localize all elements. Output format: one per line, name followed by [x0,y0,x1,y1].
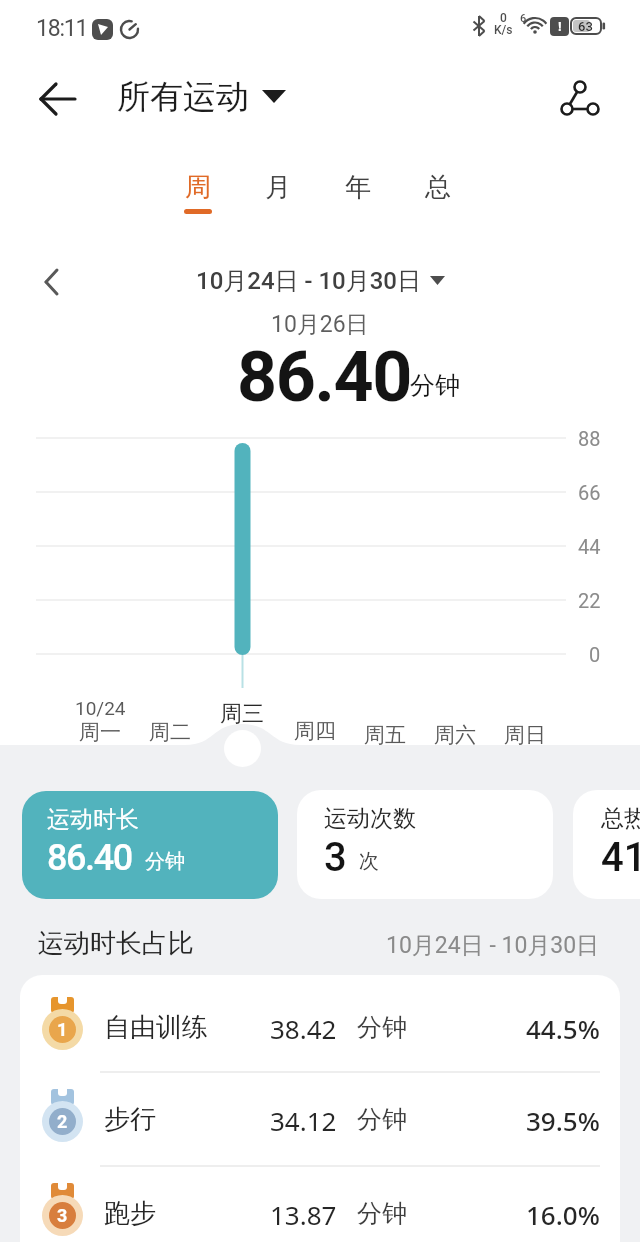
staticText: 自由训练 [104,1011,208,1044]
staticText: 次 [359,849,379,874]
staticText: 周二 [149,719,191,745]
staticText: 13.87 [270,1197,337,1232]
staticText: 0 [500,11,507,25]
button[interactable]: 所有运动 [117,76,286,118]
staticText: 分钟 [410,370,460,401]
button[interactable] [32,260,72,304]
staticText: 41 [601,834,640,881]
staticText: 周五 [364,722,406,748]
staticText: 总热量 [601,804,640,833]
staticText: 66 [578,481,601,504]
staticText: 86.40 [47,837,132,879]
staticText: ! [558,19,562,34]
staticText: 44.5% [526,1011,600,1046]
staticText: 22 [578,589,601,612]
staticText: 周一 [79,719,121,745]
staticText: 步行 [104,1103,156,1136]
staticText: 所有运动 [117,76,249,118]
button[interactable]: 运动次数 [297,790,553,899]
staticText: 分钟 [357,1012,407,1043]
button[interactable]: 3 [20,1168,620,1242]
staticText: 44 [578,535,601,558]
staticText: 3 [57,1205,68,1226]
staticText: 运动时长占比 [38,927,194,960]
staticText: 2 [57,1111,68,1132]
staticText: 跑步 [104,1197,156,1230]
staticText: 周日 [504,722,546,748]
staticText: 月 [265,171,291,204]
staticText: 总 [425,171,451,204]
staticText: 分钟 [145,849,185,874]
staticText: 周三 [220,700,264,728]
button[interactable]: 月 [246,158,310,216]
button[interactable] [550,73,606,125]
staticText: 运动次数 [324,804,416,833]
staticText: 10/24 [75,697,126,719]
button[interactable]: 周 [166,158,230,216]
staticText: 周四 [294,718,336,744]
staticText: 18:11 [36,15,88,42]
button[interactable]: 总 [406,158,470,216]
staticText: 3 [324,834,347,881]
staticText: 运动时长 [47,805,139,834]
staticText: 周六 [434,722,476,748]
staticText: 10月24日 - 10月30日 [196,266,421,296]
button[interactable] [32,75,84,123]
button[interactable]: 1 [20,982,620,1074]
staticText: 34.12 [270,1103,337,1138]
staticText: 6 [520,12,527,25]
staticText: 39.5% [526,1103,600,1138]
staticText: 16.0% [526,1197,600,1232]
button[interactable]: 2 [20,1074,620,1166]
staticText: 88 [578,427,601,450]
button[interactable]: 年 [326,158,390,216]
staticText: K/s [494,23,513,37]
staticText: 1 [57,1019,68,1040]
staticText: 周 [185,171,211,204]
button[interactable]: 运动时长 [22,791,278,899]
staticText: 10月26日 [271,310,369,339]
staticText: 0 [589,643,601,666]
staticText: 86.40 [237,336,412,418]
staticText: 38.42 [270,1011,337,1046]
staticText: 10月24日 - 10月30日 [386,931,600,960]
button[interactable]: 总热量 [573,790,640,899]
button[interactable]: 10月24日 - 10月30日 [196,266,445,296]
staticText: 分钟 [357,1104,407,1135]
staticText: 年 [345,171,371,204]
staticText: 分钟 [357,1198,407,1229]
staticText: 63 [578,19,593,34]
